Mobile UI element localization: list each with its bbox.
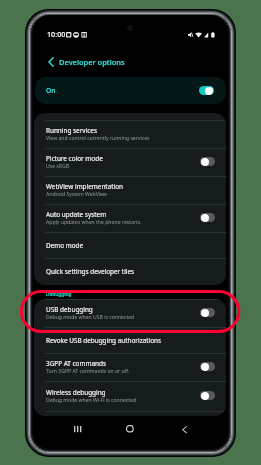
button[interactable]: Toggle [200, 308, 215, 317]
button[interactable]: Back [174, 416, 194, 442]
button[interactable]: Recent apps [67, 416, 87, 442]
button[interactable]: Wireless debugging [34, 381, 226, 411]
staticText: Debugging [46, 291, 72, 298]
button[interactable]: Revoke USB debugging authorizations [34, 327, 226, 353]
staticText: Revoke USB debugging authorizations [46, 336, 162, 345]
staticText: Use sRGB [46, 163, 69, 170]
staticText: On [46, 86, 56, 95]
button[interactable]: Demo mode [34, 232, 226, 258]
staticText: Wireless debugging [46, 388, 106, 397]
button[interactable]: Auto update system [34, 204, 226, 232]
staticText: Debug mode when Wi-Fi is connected [46, 397, 137, 404]
button[interactable]: Home [120, 416, 140, 442]
staticText: 10:00 [47, 29, 66, 39]
button[interactable]: On [35, 77, 226, 104]
button[interactable]: USB debugging [34, 299, 226, 327]
button[interactable]: Toggle [199, 86, 214, 95]
staticText: Android System WebView [46, 191, 107, 198]
staticText: Picture color mode [46, 154, 103, 163]
staticText: View and control currently running servi… [46, 135, 150, 142]
staticText: USB debugging [46, 305, 93, 314]
button[interactable]: Picture color mode [34, 148, 226, 176]
staticText: Auto update system [46, 210, 107, 219]
button[interactable]: Quick settings developer tiles [34, 258, 226, 284]
staticText: Apply updates when the phone restarts. [46, 219, 142, 226]
button[interactable]: 3GPP AT commands [34, 353, 226, 381]
staticText: Running services [46, 126, 97, 135]
button[interactable]: Toggle [200, 362, 215, 371]
staticText: Developer options [59, 57, 125, 67]
staticText: Turn 3GPP AT commands on or off. [46, 368, 130, 375]
button[interactable]: Navigate up [43, 54, 59, 70]
button[interactable]: Toggle [200, 213, 215, 222]
staticText: 3GPP AT commands [46, 359, 106, 368]
button[interactable]: Running services [34, 120, 226, 148]
staticText: Debug mode when USB is connected [46, 314, 135, 321]
staticText: Quick settings developer tiles [46, 267, 135, 276]
staticText: WebView implementation [46, 182, 123, 191]
staticText: Demo mode [46, 241, 84, 250]
button[interactable]: WebView implementation [34, 176, 226, 204]
button[interactable]: Toggle [200, 157, 215, 166]
button[interactable]: Toggle [200, 391, 215, 400]
